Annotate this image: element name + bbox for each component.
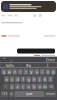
button[interactable]: I xyxy=(38,63,57,68)
button[interactable]: space xyxy=(14,91,44,97)
button[interactable]: m xyxy=(43,84,47,90)
button[interactable]: c xyxy=(21,84,25,90)
staticText: i xyxy=(42,69,43,74)
button[interactable]: return xyxy=(45,91,56,97)
button[interactable]: t xyxy=(23,69,28,75)
staticText: k xyxy=(44,76,46,82)
button[interactable]: ⌫ xyxy=(48,84,54,90)
button[interactable]: s xyxy=(10,76,14,82)
button[interactable]: Message xyxy=(17,48,55,53)
button[interactable]: Options xyxy=(33,14,36,17)
button[interactable]: o xyxy=(45,69,50,75)
staticText: b xyxy=(33,84,35,89)
staticText: y xyxy=(30,69,32,74)
button[interactable]: ⇧ xyxy=(2,84,9,90)
staticText: ⌃ xyxy=(2,57,6,63)
button[interactable]: g xyxy=(26,76,31,82)
button[interactable]: i xyxy=(40,69,45,75)
staticText: the xyxy=(26,62,31,68)
staticText: d xyxy=(16,76,18,82)
staticText: w xyxy=(8,69,11,74)
staticText: j xyxy=(39,76,40,82)
staticText: a xyxy=(5,76,7,82)
staticText: v xyxy=(27,84,29,89)
button[interactable]: the xyxy=(19,63,38,68)
button[interactable]: a xyxy=(4,76,9,82)
staticText: z xyxy=(11,84,13,89)
button[interactable]: ☺ xyxy=(9,91,14,97)
staticText: ⇧ xyxy=(5,85,7,88)
staticText: s xyxy=(11,76,13,82)
button[interactable]: d xyxy=(15,76,20,82)
button[interactable]: Previous field xyxy=(2,57,6,63)
staticText: ☺ xyxy=(10,92,13,95)
staticText: g xyxy=(27,76,29,82)
staticText: p xyxy=(52,69,54,74)
staticText: m xyxy=(43,84,47,89)
button[interactable]: Done xyxy=(46,57,55,62)
button[interactable]: e xyxy=(12,69,17,75)
staticText: ⌄ xyxy=(9,57,13,63)
staticText: x xyxy=(16,84,18,89)
button[interactable]: y xyxy=(29,69,34,75)
button[interactable]: Toolbar item xyxy=(14,15,17,16)
staticText: n xyxy=(38,84,40,89)
button[interactable]: q xyxy=(1,69,6,75)
staticText: l xyxy=(50,76,51,82)
staticText: Done xyxy=(46,57,55,62)
staticText: r xyxy=(19,69,21,74)
staticText: t xyxy=(25,69,26,74)
button[interactable]: n xyxy=(37,84,42,90)
button[interactable]: x xyxy=(15,84,20,90)
staticText: ⌫ xyxy=(49,85,53,88)
button[interactable]: p xyxy=(51,69,56,75)
button[interactable]: f xyxy=(21,76,25,82)
button[interactable]: Toolbar item xyxy=(1,15,5,16)
staticText: space xyxy=(26,92,33,96)
button[interactable]: hello xyxy=(0,63,19,68)
staticText: e xyxy=(14,69,16,74)
button[interactable]: w xyxy=(7,69,12,75)
staticText: o xyxy=(47,69,49,74)
button[interactable]: Next field xyxy=(9,57,13,63)
staticText: q xyxy=(3,69,5,74)
button[interactable]: h xyxy=(32,76,36,82)
staticText: 123 xyxy=(2,92,8,96)
button[interactable]: l xyxy=(48,76,53,82)
button[interactable]: b xyxy=(32,84,36,90)
staticText: c xyxy=(22,84,24,89)
button[interactable]: z xyxy=(10,84,14,90)
button[interactable]: Notification xyxy=(1,0,56,12)
staticText: hello xyxy=(5,62,13,68)
button[interactable]: j xyxy=(37,76,42,82)
button[interactable]: 123 xyxy=(1,91,8,97)
button[interactable]: v xyxy=(26,84,31,90)
staticText: return xyxy=(46,92,55,96)
staticText: I xyxy=(47,62,48,68)
button[interactable]: Profile xyxy=(38,14,42,17)
staticText: u xyxy=(36,69,38,74)
staticText: f xyxy=(22,76,23,82)
button[interactable]: k xyxy=(43,76,47,82)
button[interactable]: r xyxy=(18,69,23,75)
staticText: h xyxy=(33,76,35,82)
button[interactable]: u xyxy=(34,69,39,75)
